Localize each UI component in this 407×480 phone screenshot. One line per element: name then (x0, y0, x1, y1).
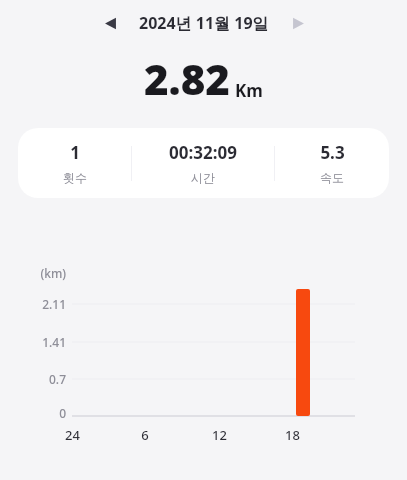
button[interactable]: Next day (283, 8, 313, 38)
staticText: Km (235, 79, 263, 102)
staticText: 2024년 11월 19일 (139, 12, 269, 34)
staticText: 1 (70, 141, 80, 164)
staticText: 12 (212, 426, 227, 444)
staticText: 0.7 (49, 371, 66, 387)
button[interactable]: 1 (18, 141, 131, 185)
staticText: 1.41 (42, 334, 66, 350)
staticText: (km) (40, 265, 66, 281)
staticText: 6 (141, 426, 149, 444)
staticText: 횟수 (63, 170, 87, 185)
staticText: 0 (59, 405, 66, 421)
staticText: 24 (65, 426, 80, 444)
staticText: 2.82 (144, 50, 230, 107)
staticText: 18 (285, 426, 300, 444)
button[interactable]: Previous day (95, 8, 125, 38)
staticText: 00:32:09 (169, 141, 237, 164)
staticText: 시간 (191, 170, 215, 185)
staticText: 2.11 (42, 296, 66, 312)
button[interactable]: 00:32:09 (132, 141, 274, 185)
staticText: 5.3 (320, 141, 345, 164)
button[interactable]: 1 (18, 128, 389, 198)
staticText: 속도 (320, 170, 344, 185)
button[interactable]: 5.3 (275, 141, 389, 185)
